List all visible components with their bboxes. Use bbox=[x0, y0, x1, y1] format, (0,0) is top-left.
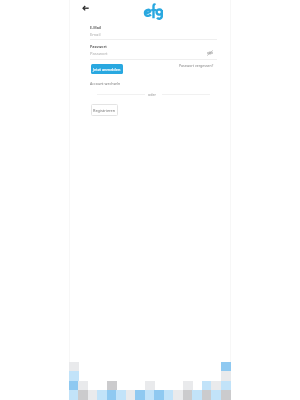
button[interactable]: Account wechseln bbox=[90, 81, 121, 86]
staticText: Registrieren bbox=[93, 108, 116, 113]
button[interactable]: Show password bbox=[205, 48, 215, 58]
button[interactable]: Passwort vergessen? bbox=[179, 63, 214, 68]
staticText: Email bbox=[90, 32, 101, 38]
button[interactable]: Jetzt anmelden bbox=[91, 64, 123, 74]
staticText: Jetzt anmelden bbox=[93, 67, 121, 72]
button[interactable]: Registrieren bbox=[91, 104, 118, 116]
button[interactable]: efg logo bbox=[144, 2, 163, 21]
button[interactable] bbox=[90, 30, 217, 39]
staticText: E-Mail bbox=[90, 25, 102, 30]
staticText: Passwort bbox=[90, 44, 107, 49]
staticText: Account wechseln bbox=[90, 81, 121, 86]
staticText: oder bbox=[148, 92, 156, 97]
button[interactable] bbox=[90, 50, 217, 59]
button[interactable]: Back bbox=[79, 1, 93, 15]
staticText: Passwort vergessen? bbox=[179, 63, 214, 68]
staticText: Passwort bbox=[90, 51, 108, 57]
